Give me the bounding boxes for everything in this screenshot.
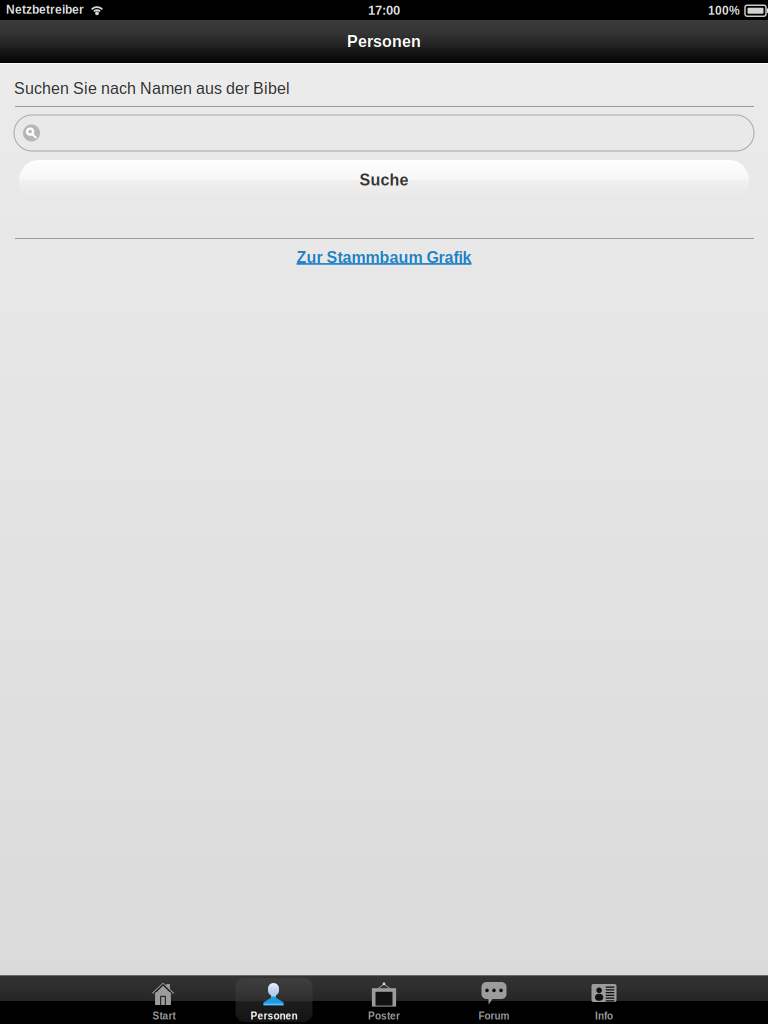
staticText: Personen (347, 33, 421, 50)
button[interactable]: Forum (455, 978, 532, 1022)
staticText: Info (595, 1010, 613, 1022)
button[interactable]: Info (565, 978, 642, 1022)
button[interactable]: Start (125, 978, 202, 1022)
button[interactable]: Zur Stammbaum Grafik (244, 247, 524, 268)
staticText: Zur Stammbaum Grafik (296, 249, 471, 266)
staticText: Netzbetreiber (6, 3, 84, 16)
staticText: Forum (478, 1010, 509, 1022)
button[interactable]: Personen (235, 978, 312, 1022)
button[interactable]: Suche (19, 160, 749, 200)
staticText: Suche (359, 171, 408, 189)
staticText: Personen (250, 1010, 297, 1022)
staticText: 100% (708, 4, 740, 17)
staticText: Poster (368, 1010, 400, 1022)
staticText: Suchen Sie nach Namen aus der Bibel (14, 80, 290, 97)
staticText: Start (152, 1010, 175, 1022)
staticText: 17:00 (368, 3, 400, 17)
button[interactable]: Poster (345, 978, 422, 1022)
